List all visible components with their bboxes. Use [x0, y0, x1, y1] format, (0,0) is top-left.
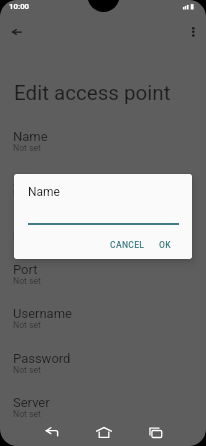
button[interactable]: Username [0, 304, 206, 348]
staticText: Not set [13, 409, 41, 419]
staticText: Password [13, 351, 71, 366]
staticText: Server [13, 395, 50, 410]
button[interactable]: OK [154, 236, 176, 254]
button[interactable]: Navigate up [5, 21, 28, 44]
button[interactable]: Recent apps [140, 418, 170, 446]
staticText: Name [13, 129, 48, 144]
button[interactable]: APN [0, 172, 206, 216]
staticText: Not set [13, 320, 41, 330]
staticText: CANCEL [110, 240, 145, 250]
button[interactable]: CANCEL [105, 236, 150, 254]
button[interactable]: More options [182, 21, 205, 44]
button[interactable]: Back [36, 418, 66, 446]
staticText: Username [13, 306, 72, 321]
staticText: 10:00 [9, 2, 30, 11]
staticText: Not set [13, 276, 41, 286]
button[interactable]: Home [89, 418, 119, 446]
staticText: APN [13, 174, 39, 189]
staticText: Port [13, 262, 38, 277]
staticText: Edit access point [14, 81, 171, 105]
staticText: OK [159, 240, 171, 250]
staticText: Not set [13, 365, 41, 375]
button[interactable]: Proxy [0, 216, 206, 260]
staticText: Name [28, 185, 60, 199]
staticText: Not set [13, 232, 41, 242]
button[interactable]: Name [0, 127, 206, 171]
staticText: Not set [13, 188, 41, 198]
button[interactable]: Server [0, 393, 206, 437]
button[interactable]: Port [0, 260, 206, 304]
button[interactable]: Password [0, 349, 206, 393]
staticText: Not set [13, 143, 41, 153]
staticText: Proxy [13, 218, 46, 233]
